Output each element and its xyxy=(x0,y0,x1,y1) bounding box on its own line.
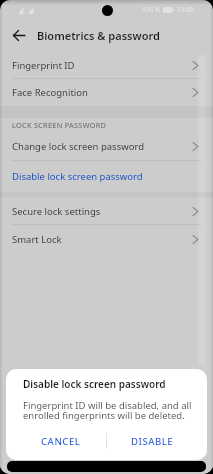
button[interactable]: Change lock screen password xyxy=(0,131,213,161)
staticText: Smart Lock xyxy=(12,233,62,246)
staticText: CANCEL xyxy=(41,435,81,448)
staticText: Disable lock screen password xyxy=(23,377,166,391)
button[interactable]: Fingerprint ID xyxy=(0,52,213,79)
button[interactable]: Face Recognition xyxy=(0,79,213,106)
staticText: Fingerprint ID xyxy=(12,59,75,72)
staticText: Fingerprint ID will be disabled, and all… xyxy=(23,399,192,422)
button[interactable] xyxy=(8,24,30,46)
button[interactable]: Disable lock screen password xyxy=(0,161,213,192)
button[interactable]: CANCEL xyxy=(6,422,106,460)
staticText: LOCK SCREEN PASSWORD xyxy=(12,120,107,130)
button[interactable]: DISABLE xyxy=(107,422,207,460)
button[interactable]: Smart Lock xyxy=(0,225,213,253)
staticText: DISABLE xyxy=(131,435,174,448)
button[interactable]: Secure lock settings xyxy=(0,197,213,225)
staticText: Disable lock screen password xyxy=(12,170,143,183)
staticText: Change lock screen password xyxy=(12,140,145,153)
staticText: Biometrics & password xyxy=(37,28,160,43)
staticText: 100 % xyxy=(142,5,161,14)
staticText: 10:00 xyxy=(177,5,194,14)
staticText: Secure lock settings xyxy=(12,205,101,218)
staticText: Face Recognition xyxy=(12,86,88,99)
